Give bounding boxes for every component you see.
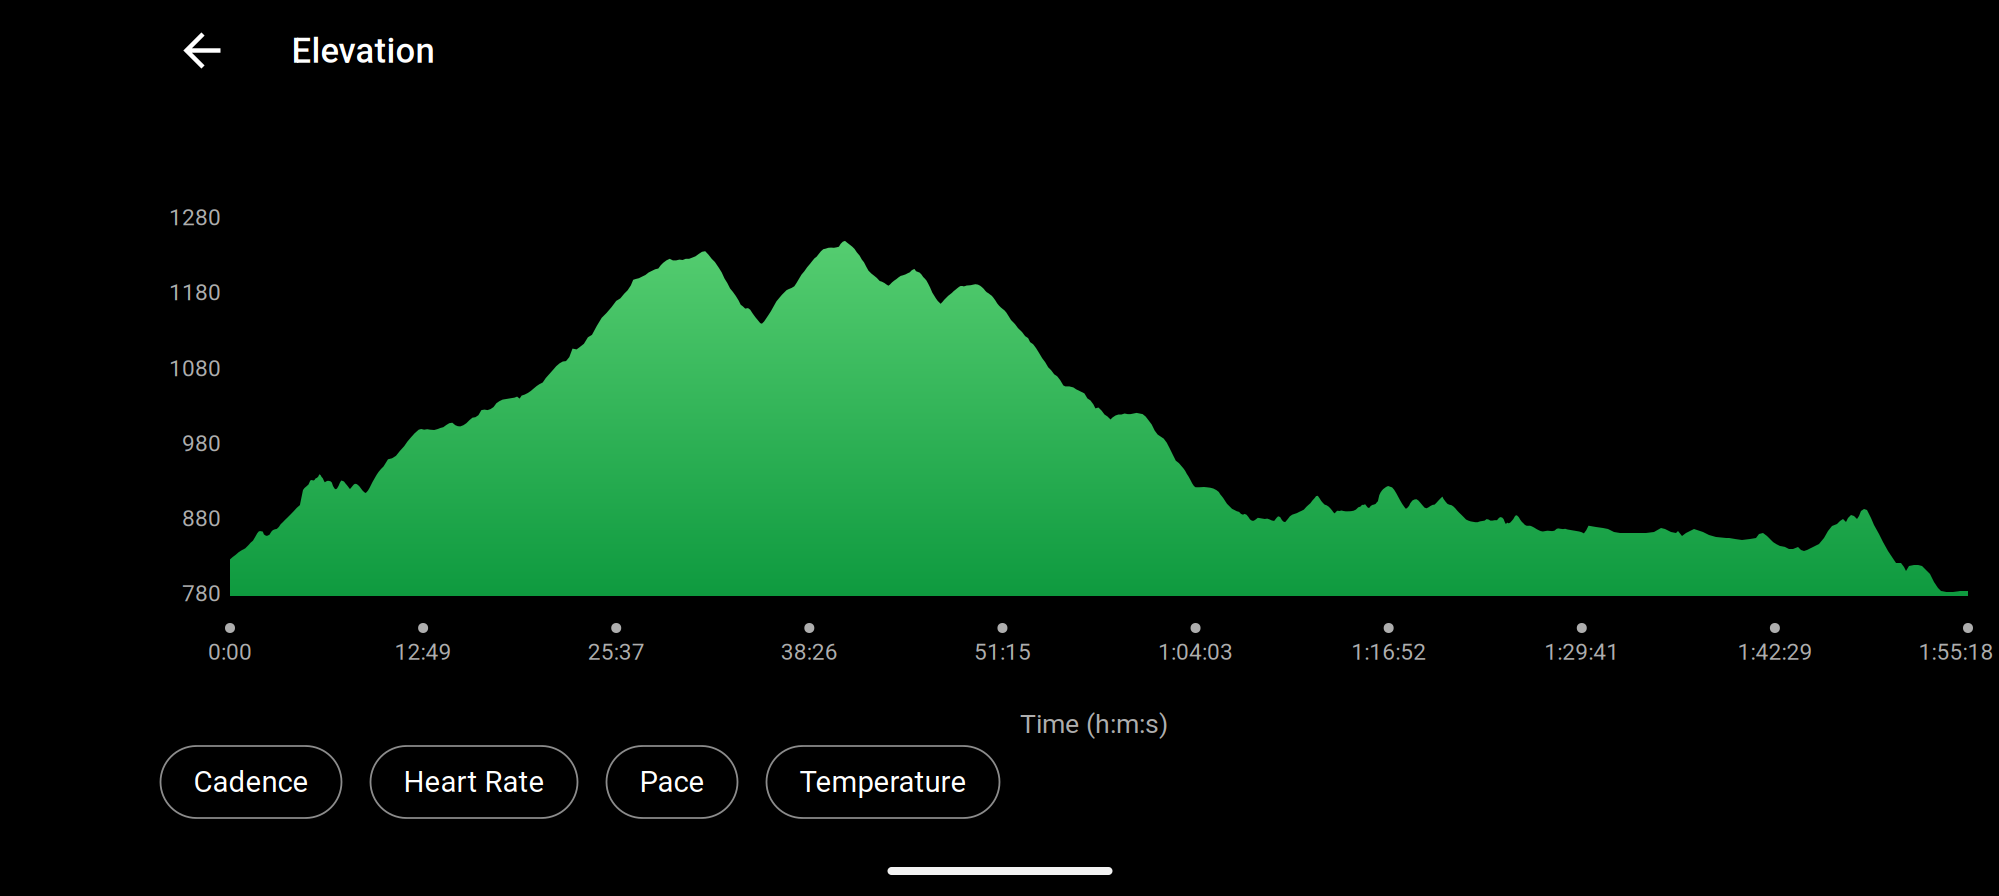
staticText: 1:55:18 bbox=[1918, 639, 1993, 665]
staticText: 51:15 bbox=[974, 639, 1031, 665]
button[interactable]: Pace bbox=[606, 746, 737, 818]
button[interactable]: Heart Rate bbox=[370, 746, 577, 818]
staticText: 1180 bbox=[169, 279, 221, 306]
staticText: 980 bbox=[182, 430, 221, 457]
staticText: 1:29:41 bbox=[1544, 639, 1619, 665]
staticText: 38:26 bbox=[781, 639, 838, 665]
staticText: Elevation bbox=[291, 31, 434, 71]
staticText: 1280 bbox=[169, 204, 221, 231]
staticText: Time (h:m:s) bbox=[1020, 708, 1168, 740]
button[interactable]: Cadence bbox=[160, 746, 341, 818]
staticText: Cadence bbox=[193, 765, 308, 799]
staticText: 1:04:03 bbox=[1158, 639, 1233, 665]
staticText: 1:42:29 bbox=[1737, 639, 1812, 665]
staticText: 880 bbox=[182, 505, 221, 532]
staticText: Pace bbox=[639, 765, 704, 799]
staticText: 0:00 bbox=[208, 639, 252, 665]
staticText: 25:37 bbox=[588, 639, 645, 665]
staticText: Heart Rate bbox=[403, 765, 544, 799]
staticText: 780 bbox=[182, 580, 221, 607]
button[interactable]: Temperature bbox=[766, 746, 999, 818]
staticText: Temperature bbox=[799, 765, 966, 799]
button[interactable]: Back bbox=[170, 17, 236, 83]
staticText: 1080 bbox=[169, 355, 221, 382]
staticText: 1:16:52 bbox=[1351, 639, 1426, 665]
staticText: 12:49 bbox=[395, 639, 452, 665]
